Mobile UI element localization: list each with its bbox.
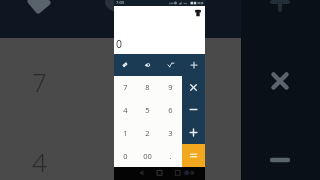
staticText: 0 (123, 151, 128, 161)
staticText: 4 (32, 144, 47, 179)
staticText: 1 (123, 128, 128, 138)
button[interactable]: 00 (136, 144, 159, 167)
staticText: 3 (168, 128, 173, 138)
button[interactable]: 0 (114, 144, 136, 167)
button[interactable]: Show history (194, 9, 202, 17)
button[interactable]: Square root (159, 54, 182, 76)
staticText: 00 (143, 151, 152, 161)
button[interactable]: Equals (182, 144, 205, 167)
button[interactable]: Add (182, 121, 205, 144)
button[interactable]: 7 (114, 76, 136, 98)
staticText: 6 (168, 105, 173, 115)
button[interactable]: 1 (114, 121, 136, 144)
button[interactable]: 6 (159, 98, 182, 121)
staticText: 9 (168, 82, 173, 92)
button[interactable]: Backspace (114, 54, 136, 76)
button[interactable]: 4 (114, 98, 136, 121)
button[interactable]: Subtract (182, 98, 205, 121)
button[interactable]: . (159, 144, 182, 167)
button[interactable]: 8 (136, 76, 159, 98)
staticText: 7 (32, 64, 47, 99)
staticText: . (169, 151, 172, 161)
button[interactable]: 2 (136, 121, 159, 144)
staticText: 2 (145, 128, 150, 138)
staticText: 8 (145, 82, 150, 92)
button[interactable]: Toggle visibility (136, 54, 159, 76)
staticText: 0 (116, 37, 123, 51)
button[interactable]: 5 (136, 98, 159, 121)
staticText: 4 (123, 105, 128, 115)
button[interactable]: Multiply (182, 76, 205, 98)
staticText: 5 (145, 105, 150, 115)
button[interactable]: 9 (159, 76, 182, 98)
button[interactable]: Memory plus (182, 54, 205, 76)
button[interactable]: 3 (159, 121, 182, 144)
staticText: 7 (123, 82, 128, 92)
staticText: 7:05 (116, 0, 125, 6)
